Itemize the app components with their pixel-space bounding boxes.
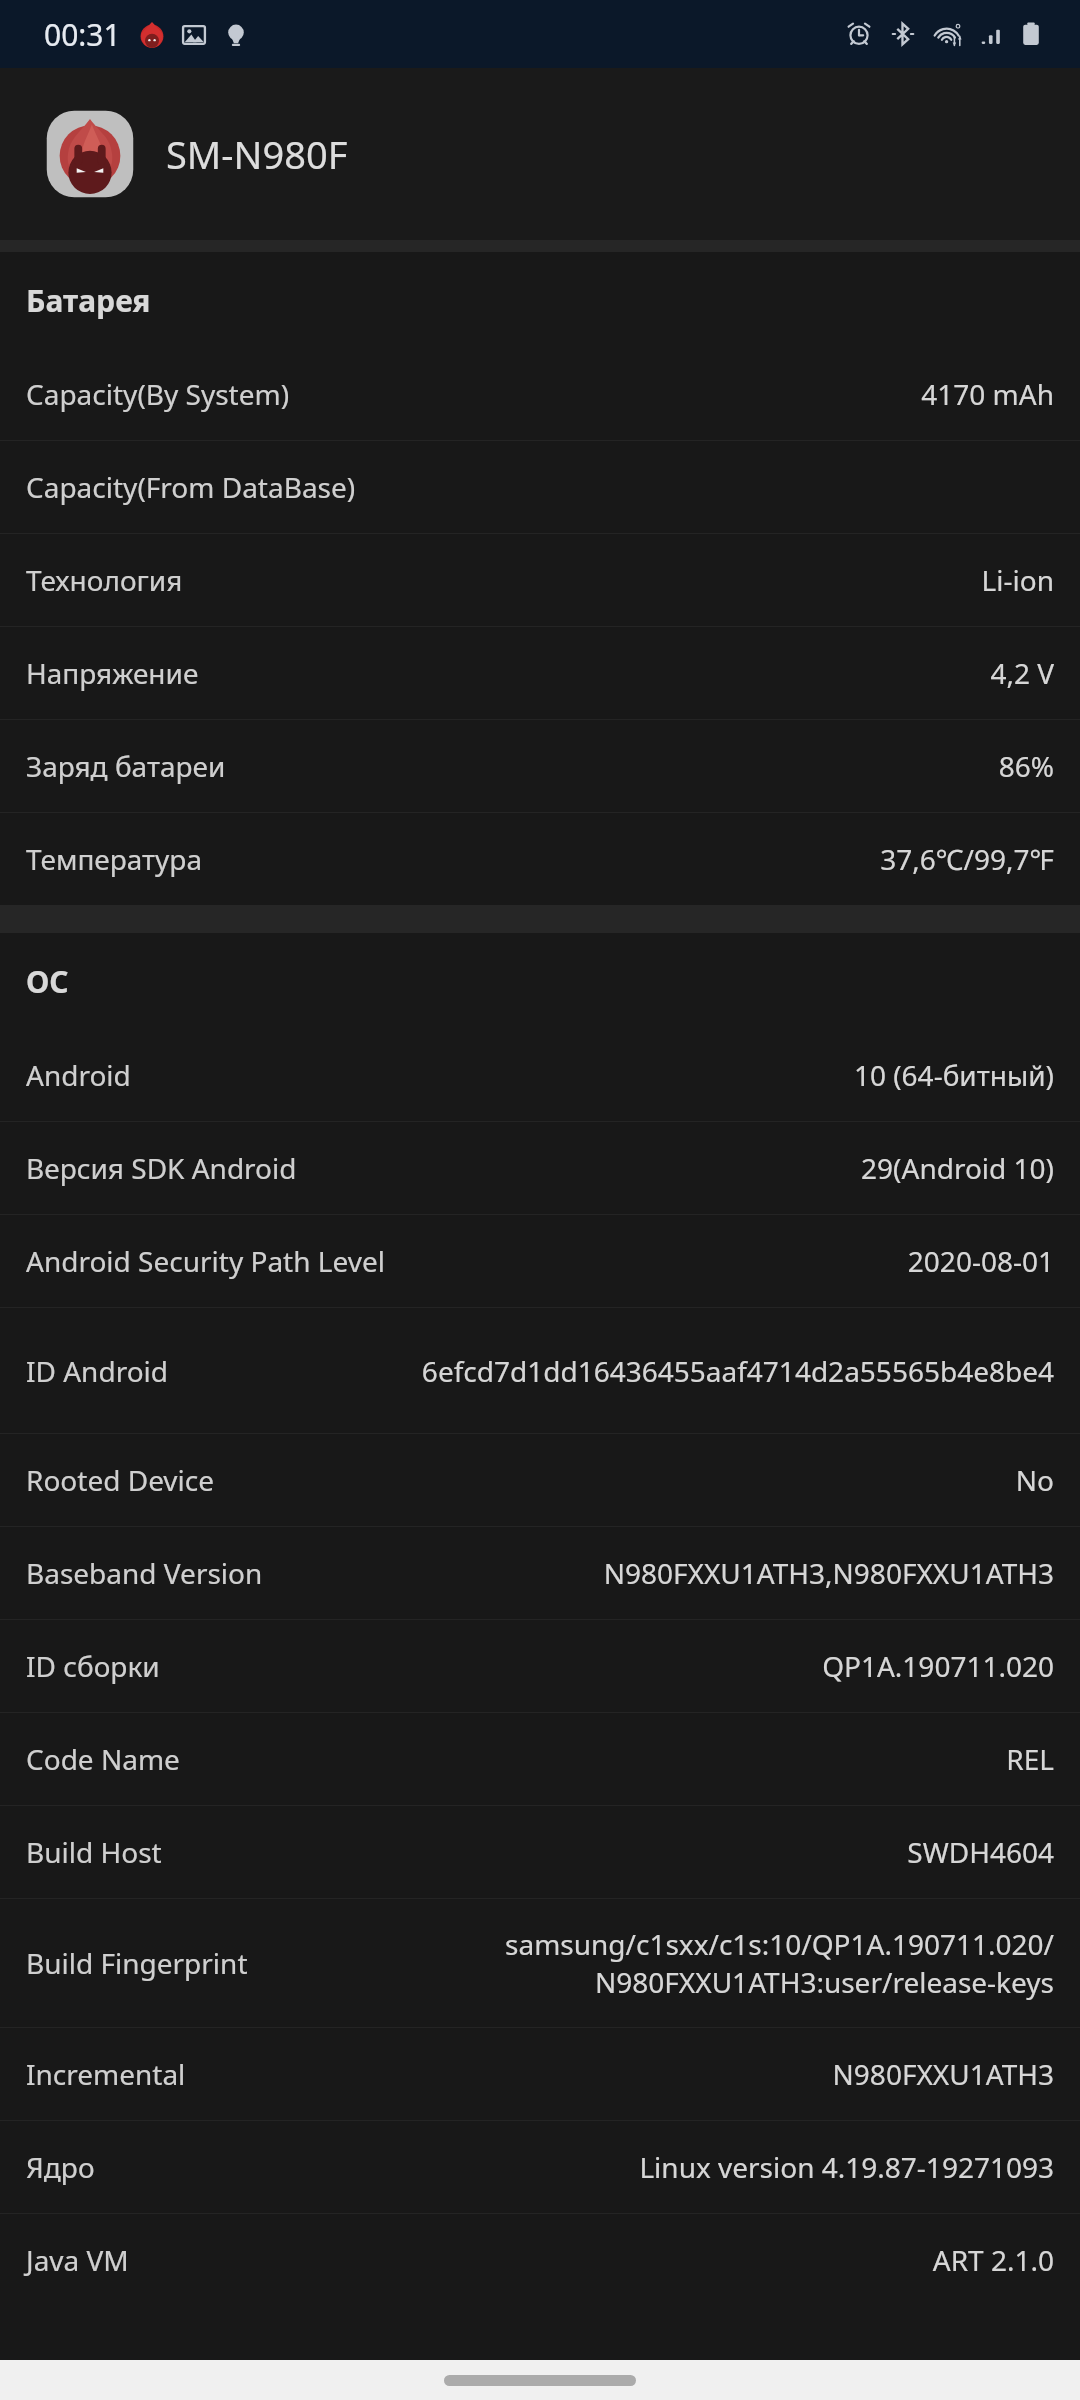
button[interactable]: ID сборки	[0, 1620, 1080, 1713]
staticText: N980FXXU1ATH3	[832, 2055, 1054, 2093]
staticText: 86%	[998, 747, 1054, 785]
button[interactable]: Java VM	[0, 2214, 1080, 2306]
staticText: Capacity(From DataBase)	[26, 468, 356, 506]
button[interactable]: Температура	[0, 813, 1080, 905]
staticText: Build Fingerprint	[26, 1944, 248, 1982]
staticText: ID сборки	[26, 1647, 160, 1685]
staticText: samsung/c1sxx/c1s:10/QP1A.190711.020/N98…	[248, 1925, 1054, 2001]
other: Home	[444, 2375, 636, 2386]
button[interactable]: Android	[0, 1029, 1080, 1122]
button[interactable]: SM-N980F	[0, 68, 1080, 240]
button[interactable]: Build Host	[0, 1806, 1080, 1899]
button[interactable]: Технология	[0, 534, 1080, 627]
staticText: Ядро	[26, 2148, 95, 2186]
staticText: ОС	[26, 961, 69, 1002]
button[interactable]: Capacity(By System)	[0, 348, 1080, 441]
button[interactable]: Ядро	[0, 2121, 1080, 2214]
button[interactable]: Code Name	[0, 1713, 1080, 1806]
staticText: SM-N980F	[166, 128, 348, 180]
staticText: Li-ion	[981, 561, 1054, 599]
staticText: Температура	[26, 840, 202, 878]
button[interactable]: Android Security Path Level	[0, 1215, 1080, 1308]
button[interactable]: Напряжение	[0, 627, 1080, 720]
staticText: N980FXXU1ATH3,N980FXXU1ATH3	[603, 1554, 1054, 1592]
staticText: Напряжение	[26, 654, 199, 692]
staticText: Build Host	[26, 1833, 162, 1871]
staticText: Linux version 4.19.87-19271093	[639, 2148, 1054, 2186]
staticText: Code Name	[26, 1740, 180, 1778]
staticText: Android Security Path Level	[26, 1242, 385, 1280]
button[interactable]: Build Fingerprint	[0, 1899, 1080, 2028]
staticText: Incremental	[26, 2055, 186, 2093]
staticText: Заряд батареи	[26, 747, 226, 785]
staticText: No	[1015, 1461, 1054, 1499]
button[interactable]: Incremental	[0, 2028, 1080, 2121]
staticText: 29(Android 10)	[861, 1149, 1054, 1187]
staticText: 4170 mAh	[921, 375, 1054, 413]
staticText: Baseband Version	[26, 1554, 263, 1592]
staticText: ID Android	[26, 1352, 169, 1390]
button[interactable]: Заряд батареи	[0, 720, 1080, 813]
staticText: Батарея	[26, 280, 151, 321]
staticText: Rooted Device	[26, 1461, 215, 1499]
staticText: 10 (64-битный)	[853, 1056, 1054, 1094]
staticText: REL	[1006, 1740, 1054, 1778]
staticText: SWDH4604	[907, 1833, 1054, 1871]
button[interactable]: Baseband Version	[0, 1527, 1080, 1620]
button[interactable]: Rooted Device	[0, 1434, 1080, 1527]
staticText: ART 2.1.0	[932, 2241, 1054, 2279]
button[interactable]: ID Android	[0, 1308, 1080, 1434]
button[interactable]: Версия SDK Android	[0, 1122, 1080, 1215]
button[interactable]: Capacity(From DataBase)	[0, 441, 1080, 534]
staticText: Технология	[26, 561, 183, 599]
staticText: 2020-08-01	[907, 1242, 1054, 1280]
staticText: 37,6℃/99,7℉	[880, 840, 1054, 878]
staticText: QP1A.190711.020	[822, 1647, 1054, 1685]
staticText: Версия SDK Android	[26, 1149, 297, 1187]
staticText: 4,2 V	[990, 654, 1054, 692]
staticText: 00:31	[44, 14, 121, 55]
staticText: Android	[26, 1056, 131, 1094]
staticText: Java VM	[26, 2241, 129, 2279]
staticText: 6efcd7d1dd16436455aaf4714d2a55565b4e8be4	[421, 1352, 1054, 1390]
staticText: Capacity(By System)	[26, 375, 290, 413]
